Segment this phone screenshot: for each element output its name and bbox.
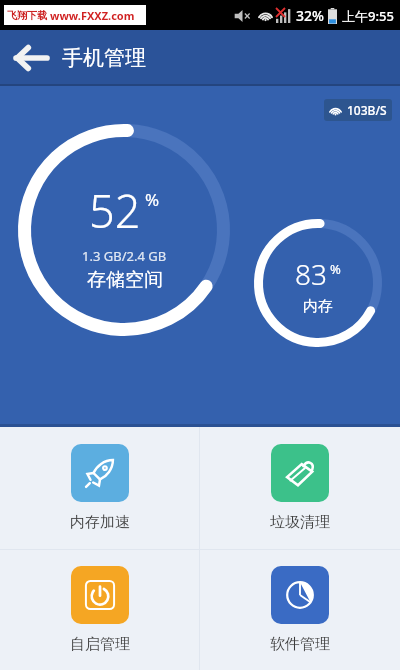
button[interactable]: 垃圾清理	[200, 427, 400, 549]
staticText: 垃圾清理	[270, 513, 330, 532]
staticText: %	[145, 188, 160, 211]
staticText: 手机管理	[62, 45, 146, 71]
staticText: 内存加速	[70, 513, 130, 532]
staticText: 1.3 GB/2.4 GB	[82, 247, 167, 265]
staticText: 存储空间	[87, 268, 163, 292]
staticText: 飞翔下载	[7, 9, 47, 22]
staticText: 32%	[296, 6, 324, 25]
button[interactable]: 103B/S	[324, 99, 392, 121]
button[interactable]: Back	[0, 30, 62, 86]
staticText: 内存	[303, 297, 333, 316]
button[interactable]: 内存加速	[0, 427, 200, 549]
staticText: 103B/S	[347, 102, 387, 118]
button[interactable]: 83	[254, 219, 382, 347]
staticText: 83	[295, 255, 327, 293]
staticText: 52	[89, 180, 141, 241]
button[interactable]: 52	[18, 124, 230, 336]
staticText: 上午9:55	[342, 7, 394, 25]
button[interactable]: 自启管理	[0, 550, 200, 670]
staticText: %	[330, 260, 341, 278]
button[interactable]: 软件管理	[200, 550, 400, 670]
staticText: 自启管理	[70, 635, 130, 654]
staticText: www.FXXZ.com	[50, 8, 135, 23]
staticText: 软件管理	[270, 635, 330, 654]
